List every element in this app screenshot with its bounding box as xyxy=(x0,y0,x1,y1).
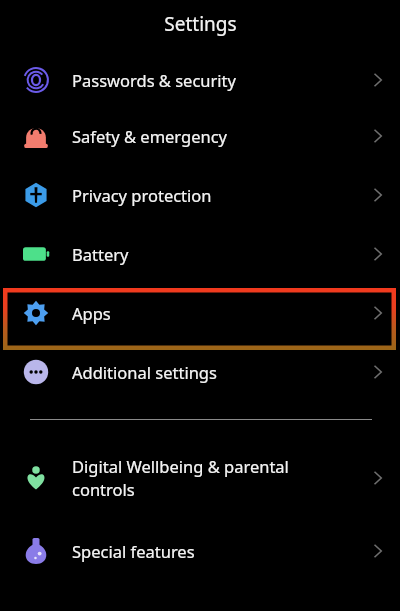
staticText: Passwords & security xyxy=(72,69,236,91)
button[interactable]: Privacy protection xyxy=(0,165,400,224)
staticText: Digital Wellbeing & parental controls xyxy=(72,455,289,501)
button[interactable]: Apps xyxy=(0,283,400,342)
button[interactable]: Safety & emergency xyxy=(0,106,400,165)
staticText: Privacy protection xyxy=(72,184,212,206)
staticText: Additional settings xyxy=(72,361,217,383)
button[interactable]: Passwords & security xyxy=(0,54,400,106)
button[interactable]: Digital Wellbeing & parental controls xyxy=(0,442,400,514)
staticText: Apps xyxy=(72,302,111,324)
button[interactable]: Special features xyxy=(0,526,400,576)
button[interactable]: Additional settings xyxy=(0,342,400,401)
staticText: Battery xyxy=(72,243,129,265)
staticText: Special features xyxy=(72,540,195,562)
button[interactable]: Battery xyxy=(0,224,400,283)
staticText: Safety & emergency xyxy=(72,125,228,147)
staticText: Settings xyxy=(164,11,237,37)
